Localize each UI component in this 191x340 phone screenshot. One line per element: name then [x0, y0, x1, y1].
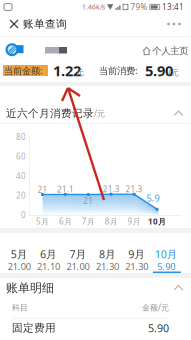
staticText: 7月 [69, 247, 86, 261]
staticText: 固定费用 [12, 321, 56, 334]
staticText: 21.10 [37, 260, 60, 273]
staticText: 8月 [99, 247, 116, 261]
staticText: 个人主页 [152, 45, 188, 57]
button[interactable]: More [0, 0, 22, 14]
button[interactable]: Close [0, 0, 18, 16]
button[interactable]: 6月 [0, 0, 29, 40]
staticText: 6月 [40, 247, 57, 261]
staticText: 8月 [105, 216, 118, 227]
staticText: 60 [16, 151, 26, 162]
staticText: 40 [16, 171, 26, 181]
staticText: 5.90 [145, 61, 173, 80]
staticText: 元 [76, 68, 84, 77]
staticText: 6月 [59, 216, 72, 227]
staticText: 13:41 [162, 2, 184, 12]
button[interactable]: 账单明细 [0, 0, 191, 18]
staticText: 21.3 [126, 184, 143, 194]
staticText: 5月 [11, 247, 28, 261]
staticText: 科目 [12, 303, 28, 312]
staticText: 21.30 [125, 260, 148, 273]
staticText: 1.46k/s [82, 3, 105, 11]
staticText: 21 [83, 195, 93, 206]
staticText: 账单查询 [23, 17, 67, 30]
button[interactable]: 8月 [0, 0, 29, 40]
button[interactable]: 个人主页 [0, 0, 44, 14]
staticText: 当前金额: [4, 64, 43, 77]
staticText: 0 [21, 210, 26, 220]
staticText: 5.90 [157, 260, 175, 273]
button[interactable]: 5月 [0, 0, 29, 40]
staticText: 80 [16, 132, 26, 142]
staticText: 当前消费: [99, 64, 138, 77]
button[interactable]: 10月 [0, 0, 29, 40]
staticText: 1.22 [53, 61, 81, 80]
staticText: 金额/元 [142, 302, 169, 313]
staticText: 9月 [128, 247, 145, 261]
staticText: 7月 [82, 216, 95, 227]
staticText: 21.3 [103, 184, 120, 194]
staticText: 5月 [36, 216, 49, 227]
staticText: 近六个月消费记录 [6, 107, 94, 120]
staticText: 79% [130, 2, 147, 12]
staticText: 20 [16, 190, 26, 201]
button[interactable]: 7月 [0, 0, 29, 40]
staticText: /元 [94, 108, 105, 119]
button[interactable]: 9月 [0, 0, 29, 40]
staticText: /元 [168, 67, 179, 78]
staticText: 账单明细 [6, 281, 54, 295]
staticText: 10月 [148, 216, 166, 227]
staticText: 5.9 [146, 192, 159, 204]
staticText: 21.30 [96, 260, 119, 273]
staticText: 9月 [128, 216, 141, 227]
staticText: 21.1 [57, 184, 74, 195]
button[interactable]: 近六个月消费记录 [0, 0, 191, 19]
staticText: 21 [37, 184, 47, 195]
staticText: 5.90 [148, 321, 169, 335]
staticText: 21.00 [8, 260, 31, 273]
staticText: 10月 [155, 247, 178, 261]
staticText: 21.00 [66, 260, 89, 273]
